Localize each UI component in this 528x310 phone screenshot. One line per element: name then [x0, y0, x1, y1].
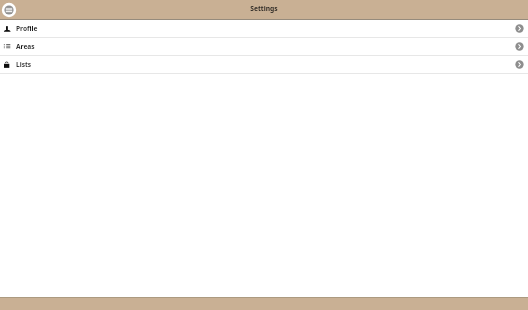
staticText: Profile [16, 24, 38, 33]
button[interactable]: Areas [0, 38, 528, 56]
button[interactable] [0, 297, 528, 310]
staticText: Settings [250, 4, 278, 13]
button[interactable]: Profile [0, 20, 528, 38]
button[interactable]: Lists [0, 56, 528, 74]
button[interactable]: Open navigation menu [0, 1, 18, 19]
staticText: Areas [16, 42, 35, 51]
staticText: Lists [16, 60, 32, 69]
